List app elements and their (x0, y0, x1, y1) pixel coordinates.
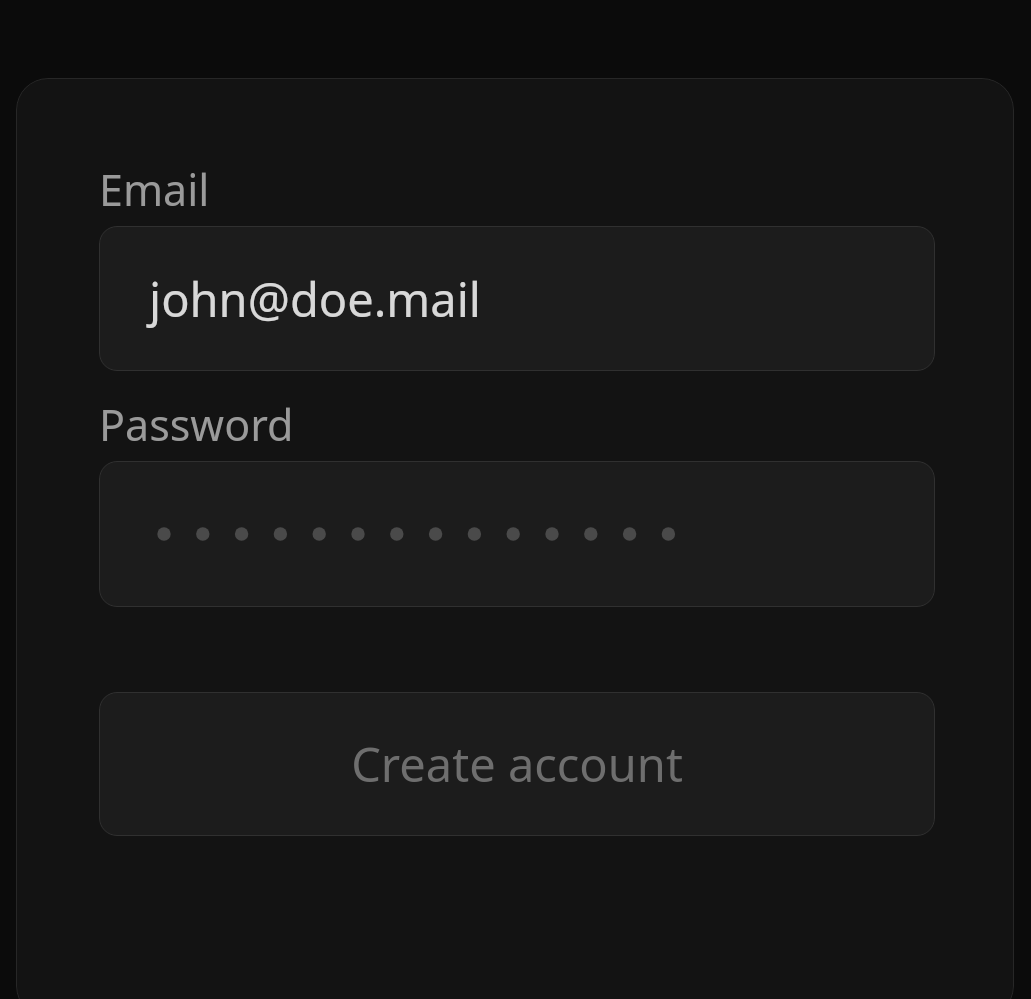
button[interactable]: Password field (99, 461, 935, 607)
staticText: Create account (351, 732, 683, 796)
button[interactable]: Create account (99, 692, 935, 836)
staticText: john@doe.mail (149, 267, 481, 331)
staticText: Email (99, 160, 210, 212)
staticText: Password (99, 395, 294, 447)
button[interactable]: john@doe.mail (99, 226, 935, 371)
